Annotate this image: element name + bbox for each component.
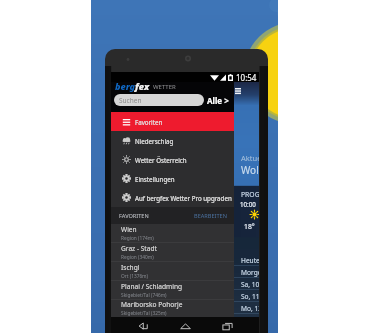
staticText: Ort (1376m) — [121, 273, 149, 280]
staticText: Region (174m) — [121, 235, 154, 242]
staticText: Sa, 10.02. — [241, 280, 259, 289]
button[interactable]: Open navigation drawer — [235, 88, 241, 94]
staticText: 10:00 — [240, 200, 256, 208]
staticText: Skigebiet/Tal (746m) — [121, 292, 167, 299]
button[interactable]: Planai / Schladming — [111, 281, 234, 299]
button[interactable]: Alle > — [207, 94, 229, 106]
button[interactable]: Einstellungen — [111, 169, 234, 188]
staticText: Niederschlag — [135, 137, 174, 145]
staticText: Einstellungen — [135, 175, 175, 183]
button[interactable]: Favoriten — [111, 112, 234, 131]
staticText: FAVORITEN — [119, 212, 149, 220]
staticText: Mo, 12.02. — [241, 304, 259, 313]
staticText: Mariborsko Pohorje — [121, 300, 183, 309]
button[interactable]: Sa, 10.02. — [234, 278, 259, 290]
button[interactable]: Graz - Stadt — [111, 243, 234, 261]
button[interactable]: Heute — [234, 254, 259, 266]
button[interactable]: BEARBEITEN — [194, 212, 227, 220]
staticText: Region (340m) — [121, 254, 154, 261]
staticText: Ischgl — [121, 263, 140, 272]
staticText: Morgen — [241, 268, 259, 277]
button[interactable]: Morgen — [234, 266, 259, 278]
button[interactable]: Mariborsko Pohorje — [111, 300, 234, 317]
staticText: Wien — [121, 225, 137, 234]
button[interactable]: So, 11.02. — [234, 290, 259, 302]
button[interactable]: Home — [174, 317, 196, 333]
staticText: berg — [115, 82, 135, 92]
staticText: WETTER — [153, 83, 176, 91]
staticText: Alle > — [207, 95, 229, 106]
button[interactable]: Wien — [111, 224, 234, 242]
button[interactable]: PROGNOSE — [234, 186, 259, 237]
staticText: fex — [135, 82, 149, 92]
button[interactable]: Back — [132, 317, 154, 333]
staticText: Heute — [241, 256, 259, 265]
button[interactable]: Mo, 12.02. — [234, 302, 259, 314]
staticText: Wetter Österreich — [135, 156, 187, 164]
staticText: Wolkig — [241, 163, 259, 177]
staticText: 18° — [244, 222, 255, 231]
button[interactable]: Ischgl — [111, 262, 234, 280]
staticText: Favoriten — [135, 118, 163, 126]
staticText: Auf bergfex Wetter Pro upgraden — [135, 194, 232, 202]
staticText: PROGNOSE — [241, 190, 259, 199]
staticText: 10:54 — [236, 72, 257, 82]
staticText: Aktuell — [241, 153, 259, 163]
staticText: Planai / Schladming — [121, 282, 183, 291]
staticText: Graz - Stadt — [121, 244, 157, 253]
button[interactable]: Auf bergfex Wetter Pro upgraden — [111, 188, 234, 207]
button[interactable]: Wetter Österreich — [111, 150, 234, 169]
button[interactable]: Recent apps — [216, 317, 238, 333]
button[interactable]: Suchen — [114, 94, 204, 106]
staticText: Suchen — [119, 96, 142, 105]
staticText: So, 11.02. — [241, 292, 259, 301]
button[interactable]: Niederschlag — [111, 131, 234, 150]
staticText: Skigebiet/Tal (325m) — [121, 310, 167, 317]
